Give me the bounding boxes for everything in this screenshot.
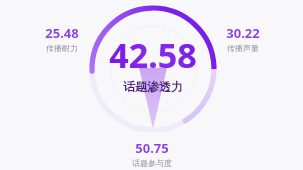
button[interactable]: 50.75 (123, 139, 181, 168)
button[interactable]: 30.22 (215, 24, 271, 53)
button[interactable]: 话题渗透力 仪表盘 (88, 2, 218, 136)
staticText: 话题参与度 (132, 158, 172, 168)
staticText: 25.48 (45, 24, 79, 42)
staticText: 传播耐力 (46, 43, 78, 53)
staticText: 42.58 (109, 32, 197, 78)
button[interactable]: 25.48 (34, 24, 90, 53)
staticText: 传播声量 (227, 43, 259, 53)
staticText: 话题渗透力 (123, 79, 183, 94)
staticText: 50.75 (135, 139, 169, 157)
staticText: 30.22 (226, 24, 260, 42)
